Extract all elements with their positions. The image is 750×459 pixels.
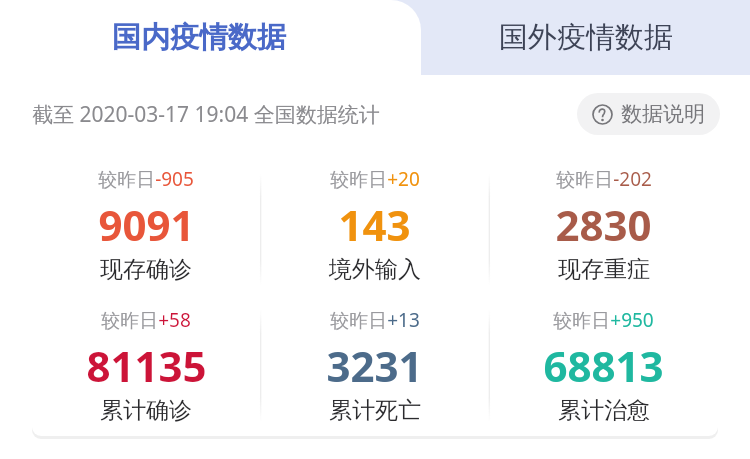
- staticText: 81135: [86, 337, 207, 394]
- staticText: 68813: [543, 337, 664, 394]
- staticText: 较昨日-202: [556, 166, 652, 192]
- button[interactable]: Data explanation: [577, 93, 720, 135]
- staticText: 2830: [555, 196, 652, 253]
- staticText: 数据说明: [621, 101, 705, 127]
- staticText: 累计死亡: [329, 396, 421, 425]
- button[interactable]: 国外疫情数据: [421, 0, 750, 75]
- staticText: 截至 2020-03-17 19:04 全国数据统计: [32, 100, 380, 129]
- button[interactable]: 较昨日-905: [32, 154, 260, 295]
- staticText: 较昨日-905: [98, 166, 194, 192]
- staticText: 143: [338, 196, 411, 253]
- staticText: 较昨日+20: [330, 166, 420, 192]
- staticText: 9091: [98, 196, 195, 253]
- button[interactable]: 较昨日+58: [32, 295, 260, 436]
- button[interactable]: 较昨日+950: [489, 295, 718, 436]
- staticText: 较昨日+58: [101, 307, 191, 333]
- staticText: 较昨日+950: [553, 307, 654, 333]
- button[interactable]: 较昨日+20: [260, 154, 489, 295]
- staticText: 境外输入: [329, 255, 421, 284]
- button[interactable]: 较昨日+13: [260, 295, 489, 436]
- staticText: 3231: [326, 337, 423, 394]
- staticText: 现存重症: [558, 255, 650, 284]
- button[interactable]: 较昨日-202: [489, 154, 718, 295]
- button[interactable]: 国内疫情数据: [0, 0, 421, 75]
- staticText: 累计确诊: [100, 396, 192, 425]
- staticText: 累计治愈: [558, 396, 650, 425]
- other: Data explanation: [592, 104, 613, 125]
- staticText: 国外疫情数据: [499, 19, 673, 56]
- staticText: 现存确诊: [100, 255, 192, 284]
- staticText: 较昨日+13: [330, 307, 420, 333]
- staticText: 国内疫情数据: [112, 19, 286, 56]
